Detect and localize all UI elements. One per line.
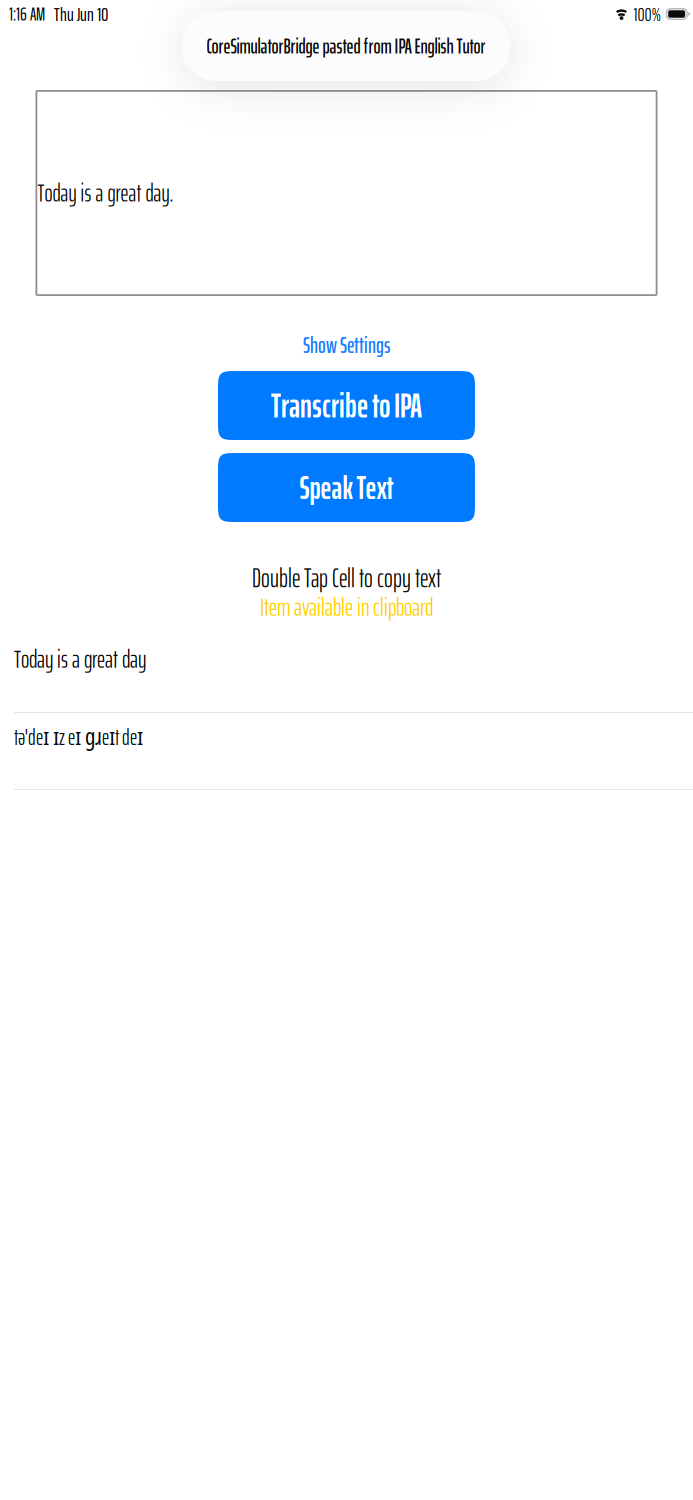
staticText: Double Tap Cell to copy text: [252, 557, 441, 599]
staticText: tə'deɪ ɪz eɪ ɡɹeɪt deɪ: [14, 719, 143, 755]
button[interactable]: Speak Text: [218, 453, 475, 522]
staticText: Today is a great day: [14, 639, 146, 679]
staticText: Thu Jun 10: [54, 0, 108, 30]
button[interactable]: tə'deɪ ɪz eɪ ɡɹeɪt deɪ: [0, 713, 693, 789]
button[interactable]: Transcribe to IPA: [218, 371, 475, 440]
staticText: 100%: [633, 0, 661, 30]
textField[interactable]: Today is a great day.: [35, 90, 657, 296]
button[interactable]: Show Settings: [291, 311, 402, 358]
staticText: 1:16 AM: [9, 0, 45, 29]
staticText: Show Settings: [303, 327, 390, 363]
staticText: Today is a great day.: [37, 174, 173, 212]
staticText: Transcribe to IPA: [271, 378, 422, 433]
staticText: Item available in clipboard: [260, 587, 433, 627]
button[interactable]: Today is a great day: [0, 635, 693, 712]
staticText: CoreSimulatorBridge pasted from IPA Engl…: [206, 29, 485, 63]
staticText: Speak Text: [299, 461, 393, 514]
